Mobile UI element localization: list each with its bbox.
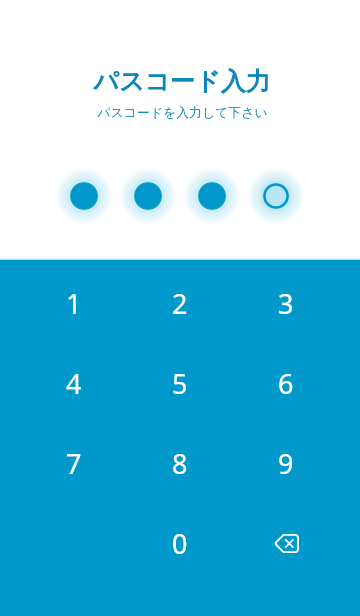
button[interactable]: 4 bbox=[21, 343, 127, 423]
staticText: 8 bbox=[172, 445, 188, 482]
staticText: 3 bbox=[278, 285, 294, 322]
button[interactable]: 6 bbox=[233, 343, 339, 423]
staticText: 6 bbox=[278, 365, 294, 402]
button[interactable]: 9 bbox=[233, 423, 339, 503]
button[interactable]: Backspace bbox=[233, 503, 339, 583]
staticText: 5 bbox=[172, 365, 188, 402]
staticText: パスコードを入力して下さい bbox=[97, 105, 268, 121]
button[interactable]: 0 bbox=[127, 503, 233, 583]
staticText: 4 bbox=[66, 365, 82, 402]
staticText: 1 bbox=[66, 285, 82, 322]
staticText: 2 bbox=[172, 285, 188, 322]
other: Backspace bbox=[274, 534, 299, 553]
button[interactable]: 5 bbox=[127, 343, 233, 423]
staticText: 7 bbox=[66, 445, 82, 482]
staticText: パスコード入力 bbox=[93, 66, 271, 97]
button[interactable]: 7 bbox=[21, 423, 127, 503]
button[interactable]: 8 bbox=[127, 423, 233, 503]
button[interactable]: 2 bbox=[127, 263, 233, 343]
staticText: 9 bbox=[278, 445, 294, 482]
button[interactable]: 3 bbox=[233, 263, 339, 343]
staticText: 0 bbox=[172, 525, 188, 562]
button[interactable]: 1 bbox=[21, 263, 127, 343]
